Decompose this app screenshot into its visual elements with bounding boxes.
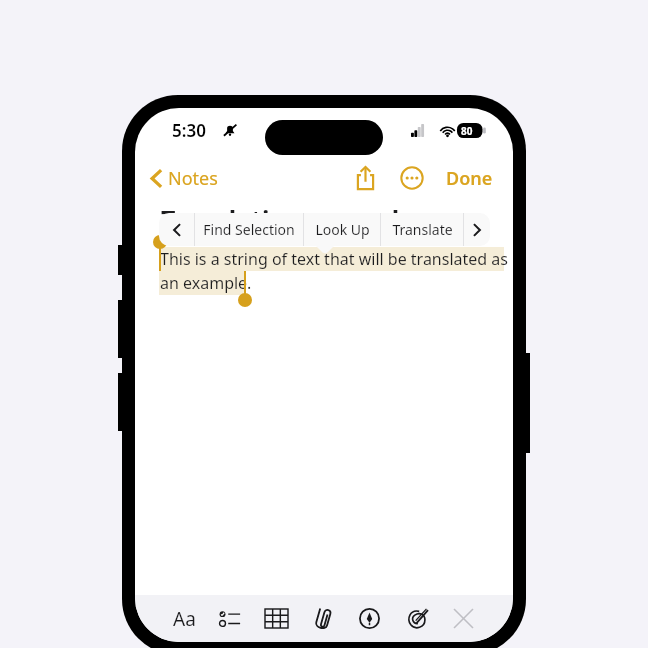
button[interactable]: Attach file [299,595,346,642]
button[interactable]: Share [351,161,380,195]
staticText: Done [446,166,493,191]
staticText: Find Selection [203,220,295,239]
staticText: 5:30 [172,119,206,142]
staticText: Translate [392,220,453,239]
button[interactable]: More options [396,162,428,194]
button[interactable]: Previous menu items [159,213,194,246]
button[interactable]: Table [253,595,299,642]
staticText: 80 [461,124,473,138]
staticText: Translation example [161,202,415,236]
button[interactable]: Notes [145,162,224,195]
button[interactable]: More menu items [464,213,490,246]
staticText: Aa [173,606,196,632]
staticText: an example. [160,272,252,294]
button[interactable]: Text formatting [161,595,207,642]
button[interactable]: Markup [346,595,393,642]
button[interactable]: Translate [381,213,463,246]
staticText: This is a string of text that will be tr… [160,248,508,270]
staticText: Notes [168,166,218,191]
button[interactable]: Checklist [207,595,253,642]
button[interactable]: Scribble [393,595,440,642]
staticText: Look Up [315,220,370,239]
button[interactable]: Close toolbar [440,595,487,642]
button[interactable]: Find Selection [195,213,303,246]
button[interactable]: Look Up [304,213,380,246]
button[interactable]: Done [442,162,497,195]
